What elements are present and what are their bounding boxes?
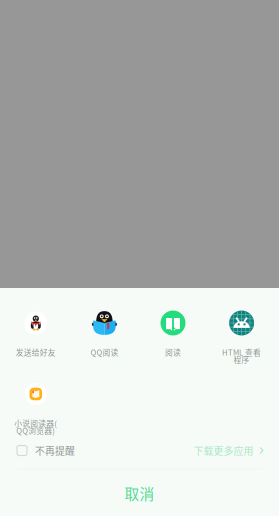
button[interactable]: 下载更多应用 <box>193 443 263 458</box>
staticText: 取消 <box>124 482 154 504</box>
staticText: QQ阅读 <box>90 346 118 358</box>
staticText: QQ浏览器) <box>16 425 55 436</box>
staticText: 小说阅读器( <box>14 417 57 429</box>
button[interactable]: 发送给好友 <box>1 310 70 372</box>
staticText: HTML 查看 <box>222 346 261 358</box>
staticText: 下载更多应用 <box>193 443 253 458</box>
staticText: 阅读 <box>165 346 181 358</box>
button[interactable]: QQ阅读 <box>70 310 139 372</box>
staticText: 不再提醒 <box>35 443 75 458</box>
button[interactable]: 不再提醒 <box>17 443 75 458</box>
staticText: 发送给好友 <box>16 346 56 358</box>
button[interactable]: 取消 <box>0 469 279 516</box>
staticText: 程序 <box>234 354 250 365</box>
button[interactable]: 阅读 <box>139 310 207 372</box>
button[interactable]: 小说阅读器( <box>1 381 70 443</box>
button[interactable]: HTML 查看 <box>207 310 276 372</box>
